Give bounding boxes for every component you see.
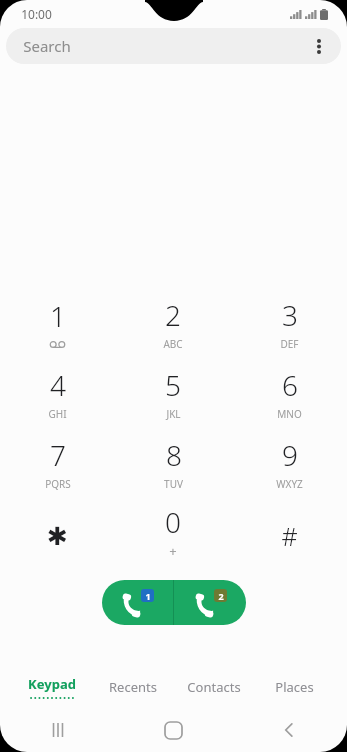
- staticText: MNO: [277, 407, 302, 421]
- button[interactable]: 4: [0, 358, 115, 428]
- button[interactable]: 6: [231, 358, 347, 428]
- staticText: 1: [145, 590, 151, 602]
- staticText: 7: [50, 436, 66, 474]
- button[interactable]: 9: [231, 428, 347, 498]
- staticText: Keypad: [28, 675, 76, 693]
- button[interactable]: #: [231, 498, 347, 568]
- button[interactable]: Search: [6, 28, 341, 64]
- staticText: +: [169, 542, 177, 560]
- button[interactable]: Back: [231, 708, 347, 752]
- staticText: #: [281, 519, 298, 553]
- staticText: 2: [165, 296, 181, 334]
- staticText: 9: [282, 436, 298, 474]
- staticText: 10:00: [21, 6, 52, 22]
- button[interactable]: Places: [254, 666, 335, 708]
- button[interactable]: Call with SIM 1: [102, 580, 173, 625]
- button[interactable]: 7: [0, 428, 115, 498]
- staticText: 8: [166, 436, 182, 474]
- button[interactable]: ✱: [0, 498, 115, 568]
- staticText: Places: [275, 678, 314, 696]
- staticText: 6: [282, 366, 298, 404]
- staticText: Contacts: [187, 678, 241, 696]
- staticText: TUV: [164, 477, 183, 491]
- staticText: 4: [50, 366, 66, 404]
- staticText: ✱: [47, 522, 68, 551]
- button[interactable]: 2: [115, 288, 231, 358]
- staticText: 0: [165, 503, 181, 541]
- button[interactable]: 1: [0, 288, 115, 358]
- staticText: WXYZ: [276, 477, 303, 491]
- button[interactable]: Home: [115, 708, 231, 752]
- button[interactable]: Recents: [92, 666, 173, 708]
- staticText: 5: [165, 366, 181, 404]
- staticText: ABC: [163, 337, 183, 351]
- staticText: PQRS: [45, 477, 71, 491]
- button[interactable]: 0: [115, 498, 231, 568]
- button[interactable]: 3: [231, 288, 347, 358]
- button[interactable]: 5: [115, 358, 231, 428]
- staticText: 2: [218, 590, 224, 602]
- button[interactable]: Keypad: [12, 666, 92, 708]
- button[interactable]: Call with SIM 2: [174, 580, 246, 625]
- staticText: JKL: [166, 407, 181, 421]
- staticText: GHI: [48, 407, 67, 421]
- staticText: DEF: [280, 337, 299, 351]
- button[interactable]: More options: [303, 30, 335, 62]
- staticText: 3: [282, 296, 298, 334]
- button[interactable]: Recent apps: [0, 708, 115, 752]
- button[interactable]: 8: [115, 428, 231, 498]
- staticText: Search: [23, 36, 71, 56]
- staticText: 1: [50, 297, 66, 335]
- staticText: Recents: [109, 678, 157, 696]
- button[interactable]: Contacts: [173, 666, 254, 708]
